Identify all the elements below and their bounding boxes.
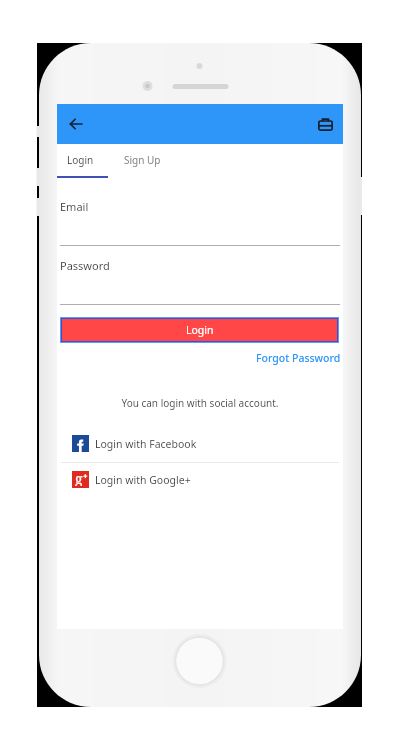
staticText: Email (60, 199, 89, 214)
button[interactable]: Login (57, 144, 103, 176)
staticText: Sign Up (124, 153, 161, 167)
button[interactable]: Login with Facebook (57, 426, 343, 461)
staticText: Login with Google+ (95, 473, 191, 487)
button[interactable]: Sign Up (103, 144, 181, 176)
staticText: Login (186, 323, 214, 337)
button[interactable]: g (57, 462, 343, 497)
staticText: g (75, 469, 83, 486)
staticText: You can login with social account. (57, 396, 343, 410)
button[interactable]: Work (310, 109, 340, 139)
button[interactable]: Back (61, 109, 91, 139)
staticText: Password (60, 258, 110, 273)
button[interactable]: Forgot Password (256, 351, 343, 365)
staticText: Login (67, 153, 94, 167)
staticText: Login with Facebook (95, 437, 197, 451)
button[interactable]: Login (61, 318, 338, 342)
